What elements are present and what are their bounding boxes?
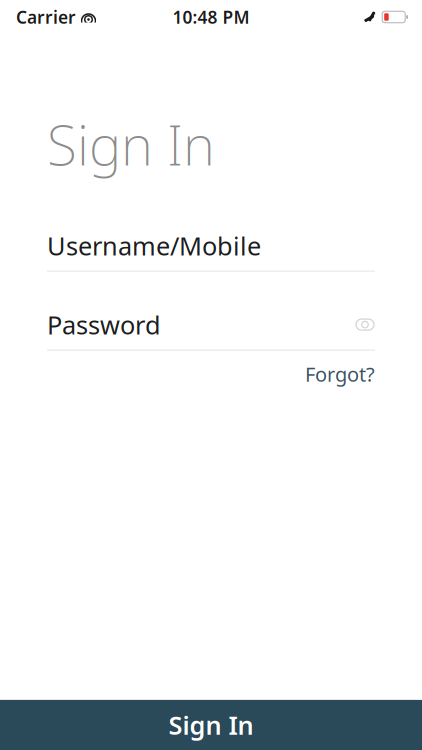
staticText: Username/Mobile [47,229,261,262]
staticText: Carrier [16,5,76,28]
button[interactable]: Show password [345,314,375,336]
staticText: 10:48 PM [172,5,249,28]
button[interactable]: Forgot? [293,351,375,393]
staticText: Forgot? [305,361,375,387]
button[interactable]: Sign In [0,700,422,750]
staticText: Sign In [47,108,215,181]
staticText: Sign In [168,708,253,742]
staticText: Password [47,308,161,341]
